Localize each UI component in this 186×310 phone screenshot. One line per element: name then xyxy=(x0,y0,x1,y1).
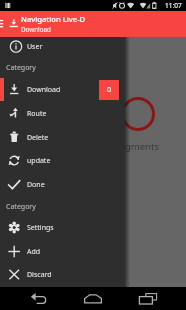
button[interactable]: Open navigation drawer xyxy=(0,11,7,37)
button[interactable]: Done xyxy=(0,173,125,196)
button[interactable]: Discard xyxy=(0,263,125,286)
button[interactable]: Add xyxy=(0,240,125,263)
staticText: Add xyxy=(27,247,41,257)
staticText: Discard xyxy=(27,270,52,280)
staticText: 11:07 xyxy=(165,1,182,10)
staticText: Done xyxy=(27,180,45,190)
staticText: Route xyxy=(27,109,47,119)
button[interactable]: User xyxy=(0,35,125,58)
staticText: Category xyxy=(6,63,36,73)
staticText: Category xyxy=(6,202,36,212)
button[interactable]: update xyxy=(0,149,125,172)
staticText: Fragments xyxy=(111,140,159,153)
staticText: Delete xyxy=(27,133,49,143)
staticText: Download xyxy=(21,25,51,34)
button[interactable]: Back xyxy=(19,287,59,310)
button[interactable]: Recent apps xyxy=(128,287,168,310)
staticText: Settings xyxy=(27,223,54,233)
staticText: 0 xyxy=(107,85,112,95)
staticText: Download xyxy=(27,85,61,95)
staticText: Navigation Live-D xyxy=(21,14,86,24)
button[interactable]: Download xyxy=(7,11,21,37)
button[interactable]: Home xyxy=(73,287,113,310)
staticText: User xyxy=(27,42,43,52)
button[interactable]: Settings xyxy=(0,216,125,239)
staticText: update xyxy=(27,156,51,166)
button[interactable]: Download xyxy=(0,78,125,101)
button[interactable]: Route xyxy=(0,102,125,125)
button[interactable]: Delete xyxy=(0,126,125,149)
